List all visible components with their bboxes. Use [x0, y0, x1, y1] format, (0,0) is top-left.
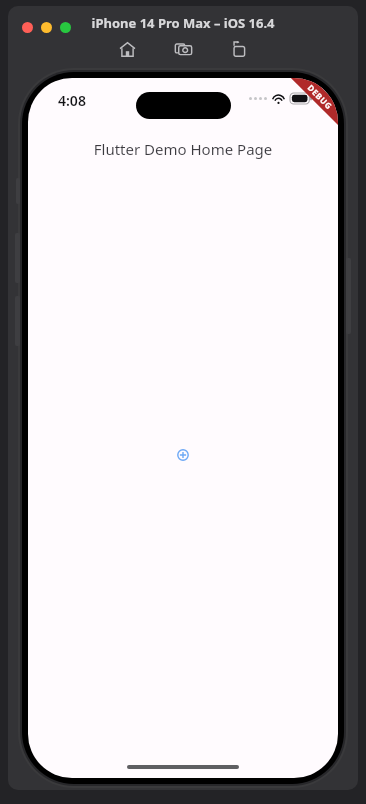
button[interactable]: Home	[114, 36, 140, 62]
button[interactable]: Close	[22, 22, 33, 33]
button[interactable]: Maximize	[60, 22, 71, 33]
staticText: iPhone 14 Pro Max – iOS 16.4	[8, 14, 358, 32]
button[interactable]: Minimize	[41, 22, 52, 33]
button[interactable]: Record screen	[226, 36, 252, 62]
button[interactable]: Screenshot	[170, 36, 196, 62]
staticText: 4:08	[58, 91, 86, 110]
staticText: Flutter Demo Home Page	[28, 139, 338, 159]
staticText: DEBUG	[305, 82, 335, 112]
button[interactable]: Increment	[172, 444, 194, 466]
